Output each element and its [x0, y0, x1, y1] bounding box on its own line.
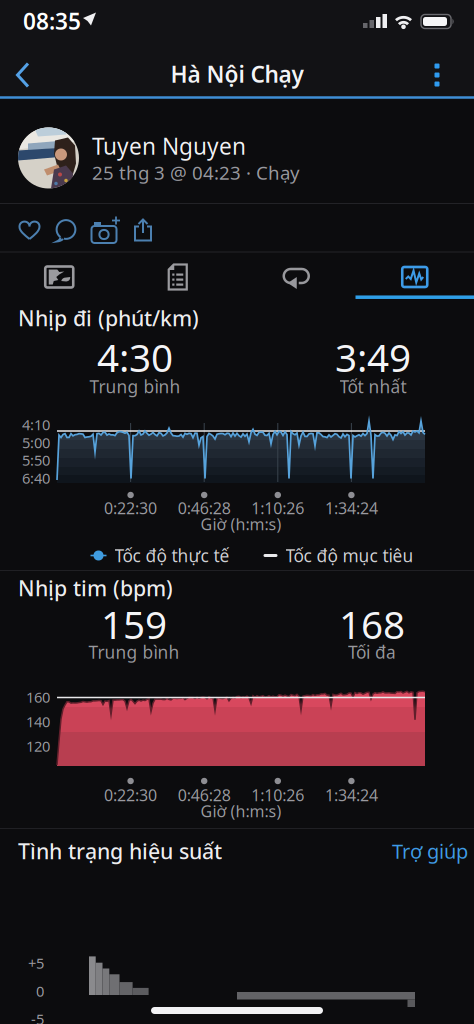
staticText: 1:34:24	[325, 784, 378, 806]
staticText: Trợ giúp	[392, 838, 468, 864]
staticText: Tuyen Nguyen	[92, 131, 246, 161]
staticText: 0:22:30	[104, 784, 157, 806]
staticText: 1:34:24	[325, 497, 378, 519]
staticText: 4:10	[22, 415, 50, 434]
button[interactable]: Splits	[0, 255, 118, 299]
staticText: Trung bình	[89, 375, 180, 398]
staticText: 6:40	[22, 468, 50, 488]
staticText: 5:50	[22, 450, 50, 470]
staticText: Giờ (h:m:s)	[200, 513, 281, 535]
staticText: Tình trạng hiệu suất	[18, 837, 222, 865]
staticText: 4:30	[97, 331, 173, 383]
button[interactable]: Like	[12, 212, 46, 248]
button[interactable]: Details	[119, 255, 237, 299]
staticText: 0:46:28	[178, 784, 231, 806]
button[interactable]: Share	[126, 212, 160, 248]
staticText: -5	[31, 1009, 44, 1024]
staticText: 120	[26, 736, 50, 756]
staticText: Nhịp tim (bpm)	[18, 574, 173, 602]
staticText: Hà Nội Chạy	[170, 59, 303, 89]
staticText: 0	[36, 981, 44, 1001]
staticText: 160	[26, 687, 50, 707]
staticText: Giờ (h:m:s)	[200, 800, 281, 822]
staticText: 25 thg 3 @ 04:23 · Chạy	[92, 160, 300, 185]
staticText: 159	[101, 598, 167, 650]
staticText: 5:00	[22, 433, 50, 452]
staticText: 0:46:28	[178, 497, 231, 519]
button[interactable]: Charts	[356, 255, 474, 299]
staticText: 08:35	[23, 6, 81, 36]
staticText: Tốt nhất	[339, 375, 406, 398]
button[interactable]: More options	[417, 53, 457, 97]
button[interactable]: Laps	[237, 255, 355, 299]
staticText: 140	[26, 712, 50, 731]
button[interactable]: Add photo	[87, 211, 125, 247]
staticText: 0:22:30	[104, 497, 157, 519]
staticText: Tốc độ mục tiêu	[285, 544, 413, 567]
button[interactable]: Comment	[49, 213, 83, 249]
button[interactable]: Back	[3, 53, 43, 97]
staticText: Nhịp đi (phút/km)	[18, 304, 199, 332]
staticText: 1:10:26	[251, 497, 304, 519]
staticText: 1:10:26	[251, 784, 304, 806]
staticText: 168	[339, 598, 405, 650]
staticText: Trung bình	[88, 640, 179, 663]
staticText: Tối đa	[348, 640, 396, 663]
staticText: 3:49	[335, 331, 411, 383]
staticText: Tốc độ thực tế	[114, 544, 229, 567]
button[interactable]: Trợ giúp	[392, 838, 468, 864]
staticText: +5	[28, 953, 44, 973]
